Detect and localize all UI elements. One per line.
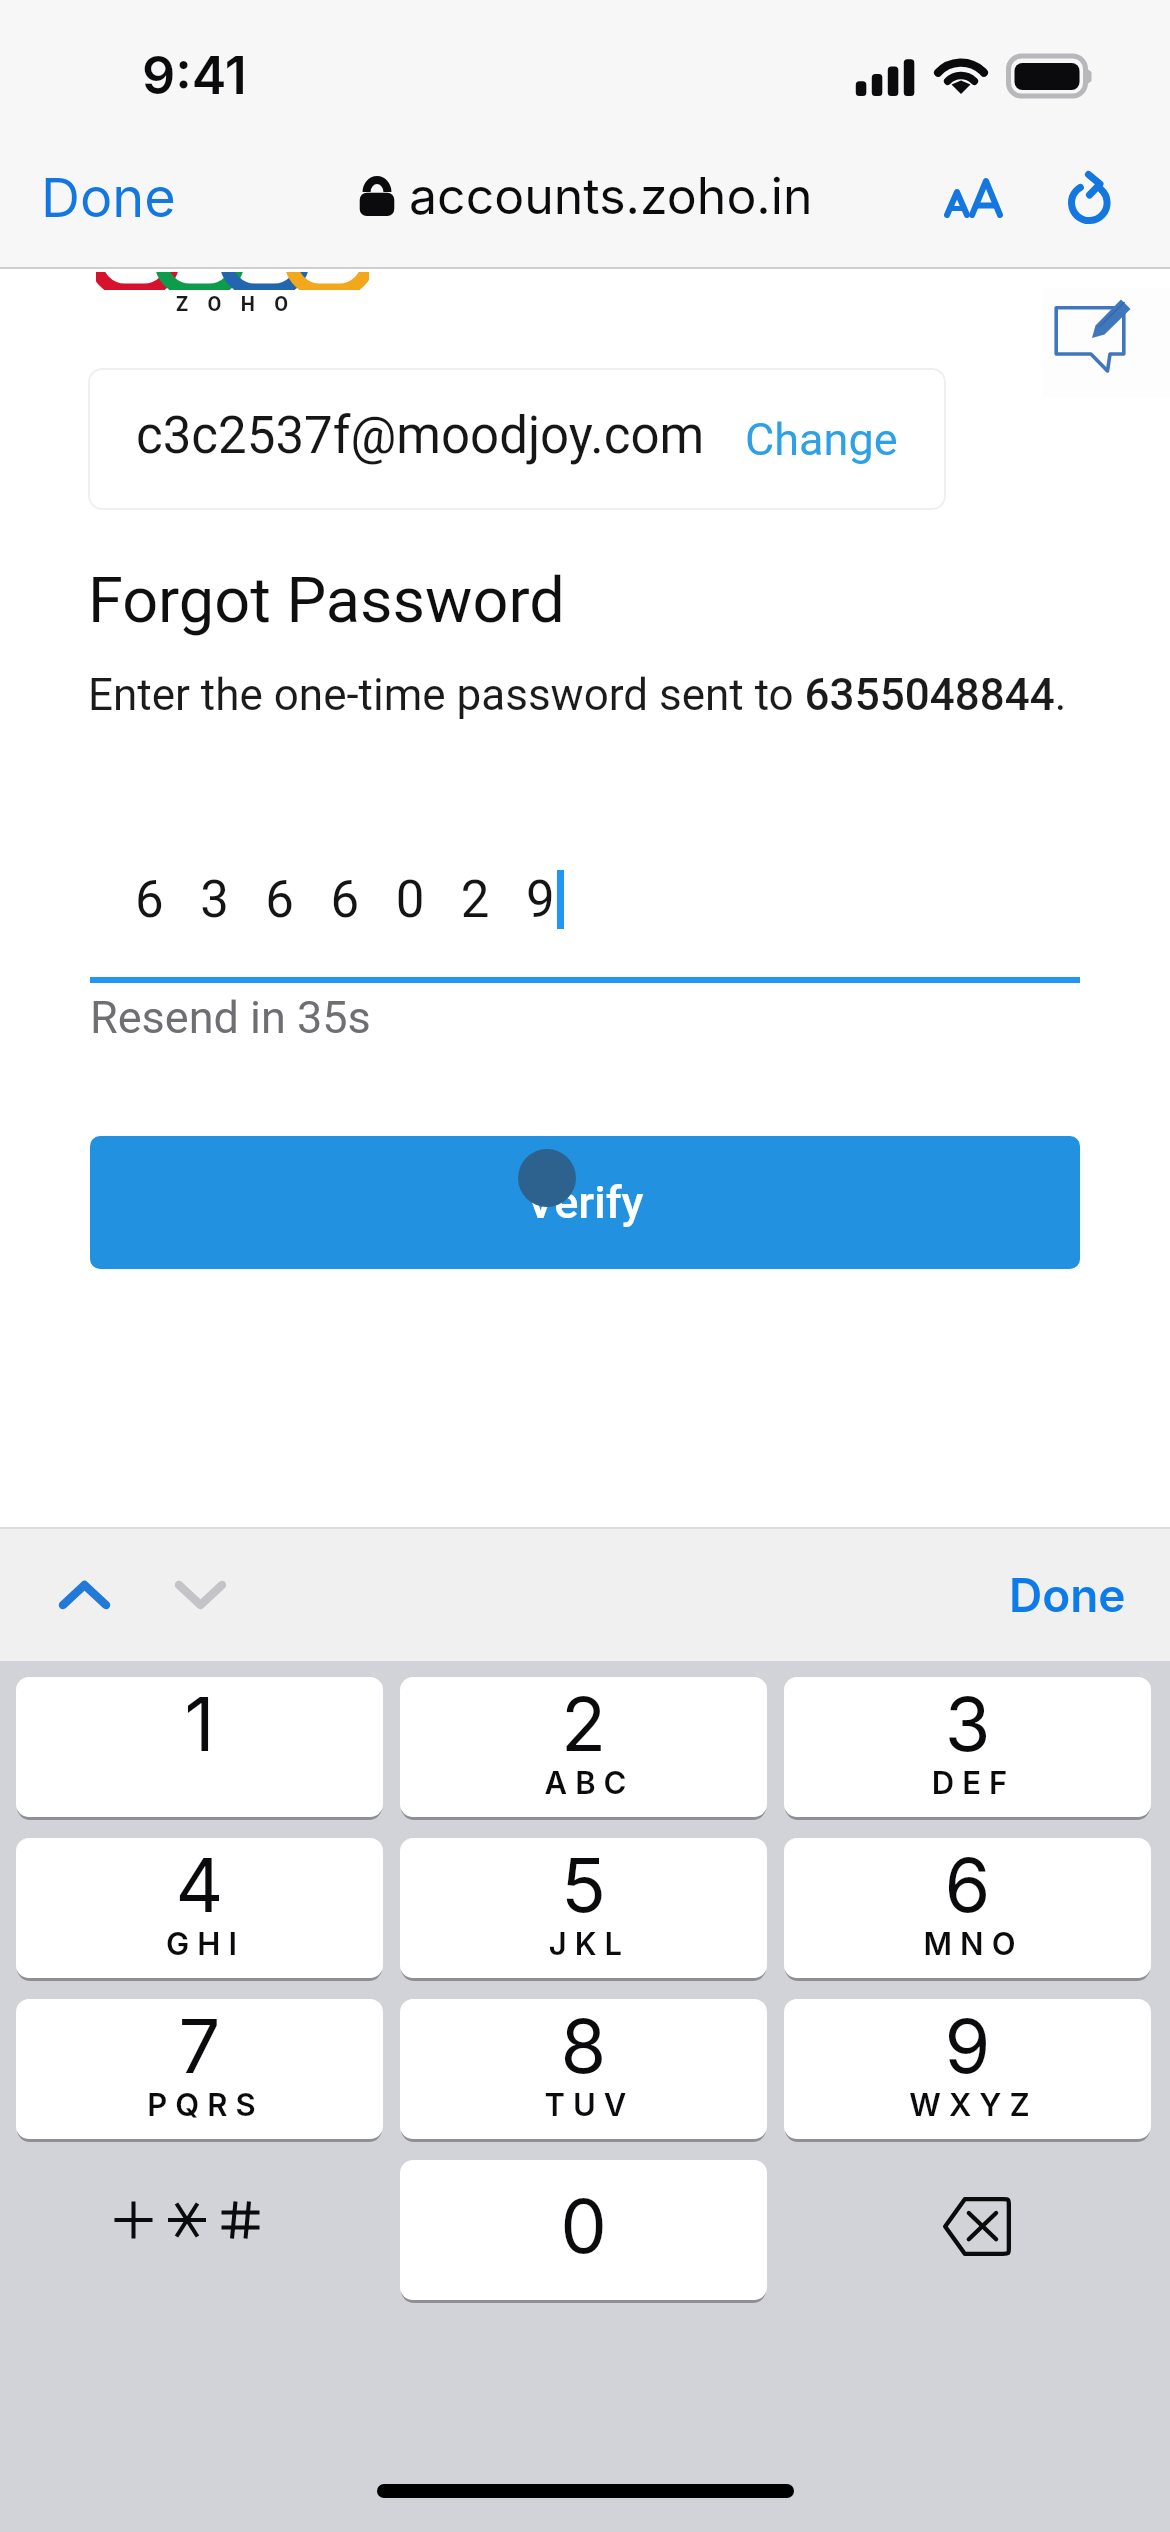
staticText: 0 <box>400 2181 767 2271</box>
staticText: 2 <box>400 1679 767 1769</box>
staticText: TUV <box>406 2086 767 2124</box>
button[interactable]: 7 <box>16 1999 383 2139</box>
button[interactable]: 2 <box>400 1677 767 1817</box>
button[interactable]: 3 <box>784 1677 1151 1817</box>
staticText: c3c2537f@moodjoy.com <box>136 406 705 466</box>
button[interactable]: Done <box>981 1543 1154 1647</box>
button[interactable]: Previous field <box>33 1540 135 1650</box>
staticText: ZOHO <box>176 292 308 315</box>
staticText: JKL <box>406 1925 767 1963</box>
staticText: 4 <box>16 1840 383 1930</box>
staticText: Forgot Password <box>88 564 565 638</box>
staticText: 7 <box>16 2001 383 2091</box>
button[interactable]: 8 <box>400 1999 767 2139</box>
button[interactable]: c3c2537f@moodjoy.com <box>88 368 946 510</box>
button[interactable]: Symbols <box>16 2160 383 2300</box>
staticText: 5 <box>400 1840 767 1930</box>
button[interactable]: Delete <box>784 2160 1151 2300</box>
staticText: 1 <box>16 1679 383 1769</box>
button[interactable]: 5 <box>400 1838 767 1978</box>
button[interactable]: Done <box>13 143 204 252</box>
staticText: Done <box>1009 1567 1126 1623</box>
staticText: GHI <box>22 1925 383 1963</box>
staticText: accounts.zoho.in <box>409 166 813 226</box>
staticText: Change <box>745 413 898 466</box>
button[interactable]: Text size <box>908 143 1036 268</box>
staticText: ABC <box>406 1764 767 1802</box>
button[interactable]: Send feedback <box>1043 288 1170 398</box>
button[interactable]: 4 <box>16 1838 383 1978</box>
staticText: Done <box>41 165 176 230</box>
staticText: 6 <box>784 1840 1151 1930</box>
staticText: 3 <box>784 1679 1151 1769</box>
staticText: 9 <box>784 2001 1151 2091</box>
staticText: DEF <box>790 1764 1151 1802</box>
staticText: MNO <box>790 1925 1151 1963</box>
button[interactable]: 9 <box>784 1999 1151 2139</box>
button[interactable]: 1 <box>16 1677 383 1817</box>
staticText: 9:41 <box>142 44 247 107</box>
button[interactable]: Verify <box>90 1136 1080 1269</box>
staticText: 6366029 <box>135 870 592 930</box>
staticText: 8 <box>400 2001 767 2091</box>
staticText: WXYZ <box>790 2086 1151 2124</box>
button[interactable]: accounts.zoho.in <box>333 146 839 246</box>
staticText: Resend in 35s <box>90 991 371 1044</box>
staticText: PQRS <box>22 2086 383 2124</box>
button[interactable]: Next field <box>149 1540 251 1650</box>
button[interactable]: 0 <box>400 2160 767 2300</box>
button[interactable]: Reload page <box>1029 143 1149 268</box>
staticText: Verify <box>526 1176 644 1229</box>
button[interactable]: 6 <box>784 1838 1151 1978</box>
staticText: Enter the one-time password sent to 6355… <box>88 669 1067 721</box>
